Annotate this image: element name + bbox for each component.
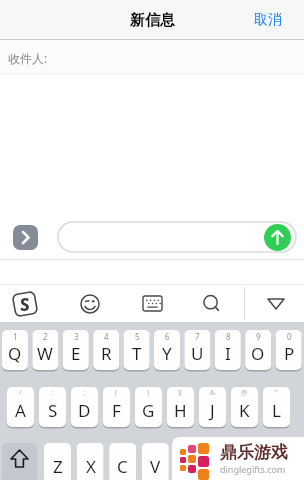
staticText: I [225,342,231,365]
button[interactable] [203,295,221,313]
button[interactable]: Y [154,330,180,370]
staticText: K [239,399,250,422]
button[interactable]: M [240,443,267,480]
button[interactable]: P [276,330,302,370]
staticText: 7 [195,331,200,342]
button[interactable]: H [167,387,194,427]
button[interactable]: 取消 [254,11,282,29]
staticText: ; [84,388,86,398]
button[interactable]: G [135,387,162,427]
staticText: P [284,342,295,365]
staticText: F [112,399,121,422]
staticText: " [275,388,278,398]
staticText: C [117,455,128,478]
button[interactable] [267,298,285,310]
staticText: 2 [43,331,48,342]
button[interactable]: N [207,443,234,480]
button[interactable]: Z [44,443,71,480]
button[interactable]: W [32,330,58,370]
staticText: H [174,399,187,422]
button[interactable]: B [174,443,201,480]
staticText: 5 [135,331,140,342]
staticText: $ [178,388,183,398]
staticText: U [191,342,204,365]
staticText: M [246,455,262,478]
staticText: O [251,342,265,365]
button[interactable]: V [142,443,169,480]
button[interactable] [264,224,291,251]
staticText: 取消 [254,11,282,29]
staticText: S [20,293,30,316]
staticText: E [71,342,81,365]
staticText: B [182,455,194,478]
button[interactable]: F [103,387,130,427]
staticText: & [210,388,216,398]
staticText: @ [241,388,248,398]
staticText: 8 [226,331,231,342]
button[interactable] [13,225,38,250]
staticText: 新信息 [130,11,175,30]
button[interactable] [80,294,100,314]
staticText: 收件人: [8,50,48,66]
button[interactable]: I [215,330,241,370]
staticText: J [210,399,215,422]
staticText: Z [53,455,63,478]
staticText: L [272,399,281,422]
staticText: W [37,342,53,365]
button[interactable]: O [245,330,271,370]
staticText: S [48,399,58,422]
staticText: 1 [13,331,18,342]
staticText: D [78,399,91,422]
button[interactable]: R [93,330,119,370]
button[interactable]: C [109,443,136,480]
staticText: 鼎乐游戏 [220,442,288,463]
button[interactable]: E [63,330,89,370]
button[interactable] [143,296,162,311]
staticText: 9 [256,331,261,342]
staticText: 4 [104,331,109,342]
button[interactable]: U [184,330,210,370]
staticText: N [214,455,227,478]
staticText: V [150,455,161,478]
button[interactable]: X [77,443,104,480]
button[interactable]: 收件人: [0,40,304,75]
staticText: ) [147,388,150,398]
staticText: / [19,388,22,398]
staticText: R [101,342,112,365]
button[interactable]: A [7,387,34,427]
button[interactable]: T [124,330,150,370]
staticText: ( [115,388,118,398]
button[interactable]: S [12,291,38,317]
button[interactable]: D [71,387,98,427]
button[interactable]: L [263,387,290,427]
staticText: X [86,455,96,478]
staticText: : [52,388,54,398]
staticText: 0 [287,331,292,342]
button[interactable]: J [199,387,226,427]
button[interactable]: Q [2,330,28,370]
staticText: Y [162,342,172,365]
button[interactable]: K [231,387,258,427]
button[interactable]: S [39,387,66,427]
staticText: 3 [74,331,79,342]
staticText: 6 [165,331,170,342]
staticText: A [15,399,26,422]
staticText: dinglegifts.com [220,463,286,475]
staticText: Q [8,342,22,365]
staticText: G [142,399,155,422]
staticText: T [132,342,142,365]
